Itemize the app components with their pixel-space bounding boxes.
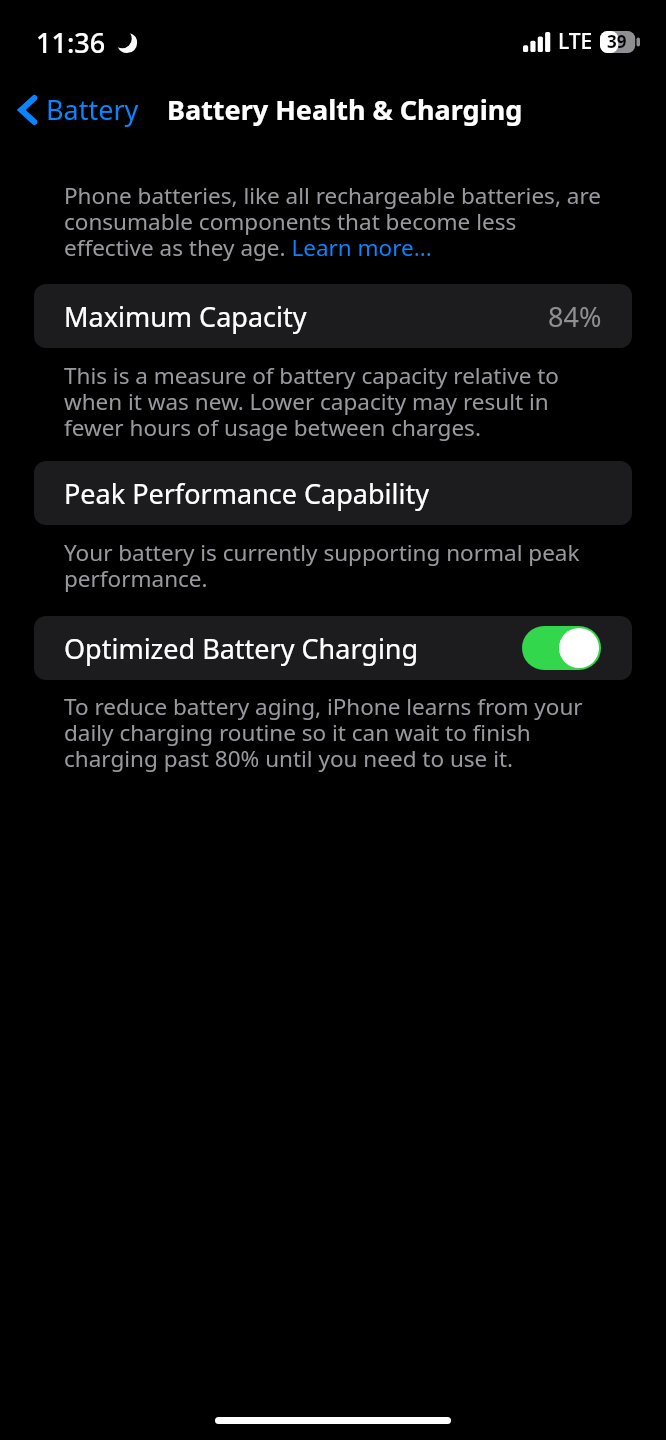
staticText: Your battery is currently supporting nor… [64, 537, 608, 594]
button[interactable]: Battery [0, 85, 147, 134]
button[interactable]: Peak Performance Capability [34, 461, 632, 525]
staticText: 84% [548, 298, 602, 335]
staticText: This is a measure of battery capacity re… [64, 360, 608, 443]
staticText: 39 [607, 30, 627, 53]
staticText: Battery Health & Charging [167, 91, 523, 128]
staticText: To reduce battery aging, iPhone learns f… [64, 691, 608, 774]
staticText: LTE [558, 27, 593, 56]
staticText: Maximum Capacity [64, 298, 307, 335]
staticText: Battery [46, 91, 139, 128]
button[interactable]: Optimized Battery Charging toggle [522, 626, 601, 670]
button[interactable]: Optimized Battery Charging [34, 616, 632, 680]
staticText: Optimized Battery Charging [64, 630, 419, 667]
staticText: Phone batteries, like all rechargeable b… [64, 180, 608, 263]
staticText: Peak Performance Capability [64, 475, 429, 512]
staticText: 11:36 [36, 24, 106, 61]
button[interactable]: Maximum Capacity [34, 284, 632, 348]
